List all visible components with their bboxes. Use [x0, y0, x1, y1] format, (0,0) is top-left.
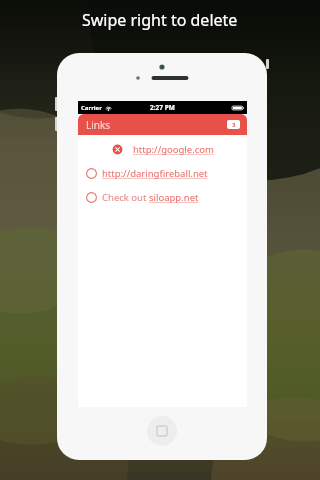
staticText: Links — [86, 118, 111, 132]
staticText: http://google.com — [133, 143, 214, 156]
button[interactable]: Links — [78, 114, 247, 135]
staticText: 3 — [232, 121, 236, 129]
staticText: Carrier — [81, 104, 102, 112]
other: Mark link — [86, 168, 97, 179]
other: Delete link — [112, 144, 123, 155]
button[interactable]: Delete link — [78, 137, 247, 161]
staticText: http://daringfireball.net — [102, 167, 208, 180]
button[interactable]: Mark link — [78, 161, 247, 185]
button[interactable]: Mark link — [78, 185, 247, 209]
other: Mark link — [86, 192, 97, 203]
staticText: 2:27 PM — [150, 103, 175, 112]
staticText: Check out — [102, 191, 149, 204]
staticText: siloapp.net — [149, 191, 199, 204]
staticText: Swipe right to delete — [82, 9, 238, 31]
